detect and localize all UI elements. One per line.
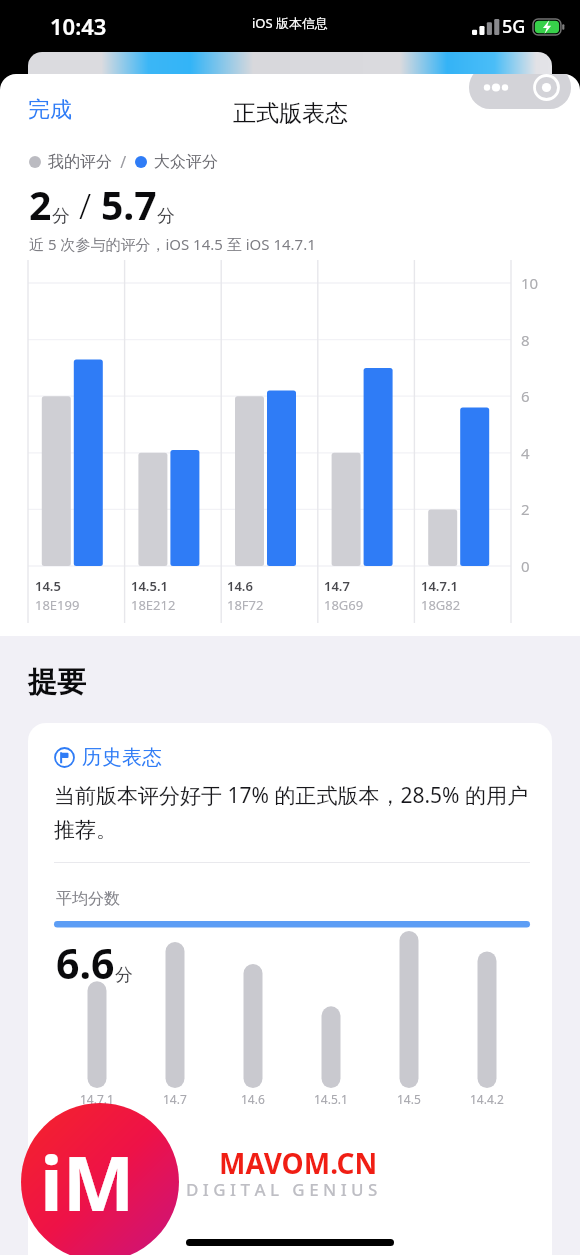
staticText: 14.5 [397,1091,421,1107]
staticText: 8 [521,330,530,350]
staticText: 0 [521,556,530,576]
staticText: D I G I T A L G E N I U S [186,1178,378,1201]
staticText: 6 [521,386,530,406]
staticText: iM [40,1130,135,1234]
staticText: 分 [157,205,175,228]
staticText: 提要 [28,664,86,701]
staticText: 18E212 [131,596,176,614]
staticText: 分 [52,205,70,228]
staticText: 当前版本评分好于 17% 的正式版本，28.5% 的用户推荐。 [54,781,532,843]
staticText: 5G [502,14,526,39]
staticText: 14.7 [163,1091,187,1107]
button[interactable]: Close [522,74,571,109]
button[interactable]: 历史表态 [28,723,552,1255]
staticText: / [70,182,101,230]
staticText: 14.5.1 [131,577,168,595]
staticText: 历史表态 [82,745,162,770]
staticText: MAVOM.CN [219,1144,378,1182]
staticText: iOS 版本信息 [252,14,329,32]
staticText: 近 5 次参与的评分，iOS 14.5 至 iOS 14.7.1 [29,234,316,254]
staticText: 18F72 [227,596,264,614]
staticText: 正式版表态 [233,99,348,128]
staticText: 18G82 [421,596,461,614]
staticText: 2 [521,499,530,519]
staticText: 14.6 [241,1091,265,1107]
staticText: 14.7.1 [80,1091,114,1107]
staticText: 2 [29,178,52,231]
staticText: 10:43 [50,11,107,41]
staticText: 14.6 [227,577,253,595]
staticText: 18G69 [324,596,364,614]
staticText: 14.7.1 [421,577,458,595]
button[interactable]: More options [469,74,522,109]
staticText: 5.7 [101,178,157,231]
staticText: 我的评分 [48,152,112,172]
staticText: 平均分数 [56,889,120,909]
button[interactable]: 完成 [12,88,88,132]
staticText: 14.4.2 [470,1091,504,1107]
staticText: 10 [521,273,539,293]
staticText: 14.5 [35,577,61,595]
staticText: 6.6 [56,935,115,991]
staticText: 14.7 [324,577,350,595]
staticText: 18E199 [35,596,80,614]
staticText: / [112,151,135,173]
staticText: 完成 [28,96,72,124]
staticText: 大众评分 [154,152,218,172]
staticText: 4 [521,443,530,463]
staticText: 分 [115,964,133,987]
staticText: 14.5.1 [314,1091,348,1107]
